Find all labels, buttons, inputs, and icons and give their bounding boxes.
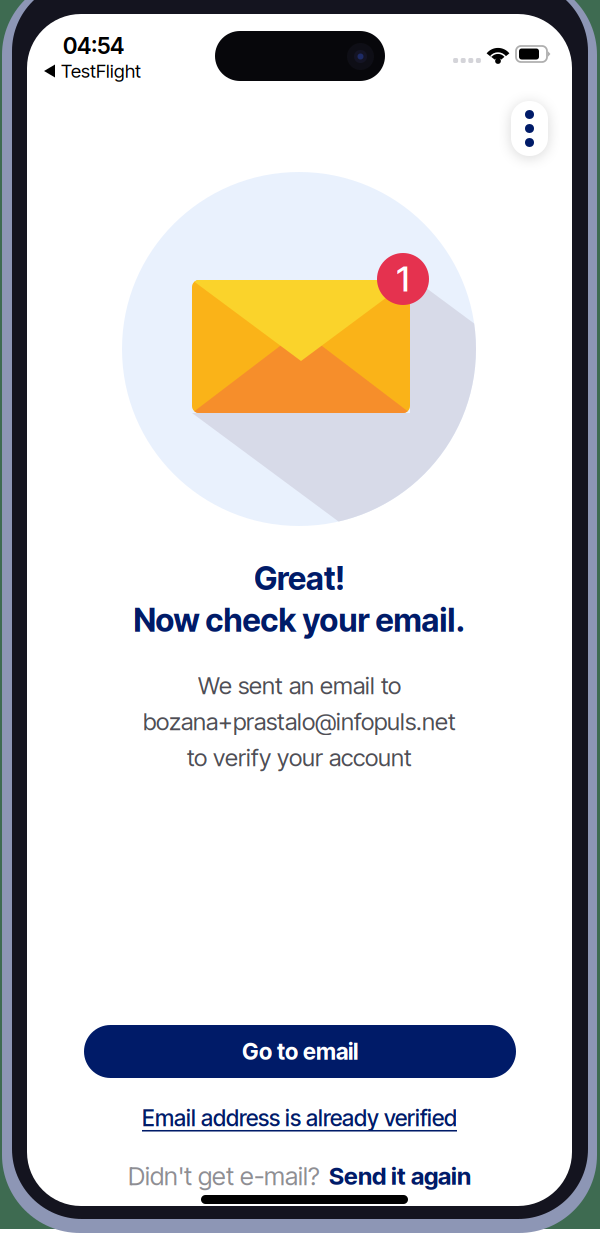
button[interactable]: Email address is already verified <box>27 1100 572 1136</box>
staticText: Didn't get e-mail? <box>128 1161 320 1191</box>
staticText: Now check your email. <box>133 601 465 639</box>
staticText: TestFlight <box>61 60 141 82</box>
staticText: to verify your account <box>187 743 412 772</box>
staticText: bozana+prastalo@infopuls.net <box>143 707 456 736</box>
staticText: Email address is already verified <box>142 1104 457 1132</box>
staticText: Send it again <box>329 1161 471 1190</box>
staticText: 1 <box>396 258 409 300</box>
button[interactable]: More options <box>511 101 548 156</box>
button[interactable]: TestFlight <box>44 60 141 82</box>
staticText: 04:54 <box>63 32 124 59</box>
button[interactable]: Send it again <box>329 1161 471 1190</box>
button[interactable]: Go to email <box>84 1025 516 1078</box>
staticText: Go to email <box>242 1038 358 1065</box>
staticText: Great! <box>254 559 345 598</box>
staticText: We sent an email to <box>198 671 401 700</box>
